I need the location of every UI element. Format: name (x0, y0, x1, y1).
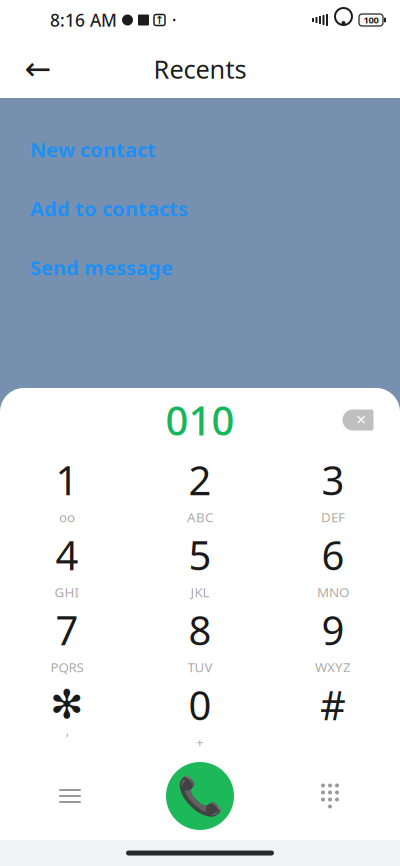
button[interactable]: 1 (0, 452, 133, 527)
button[interactable]: Send message (0, 238, 400, 297)
button[interactable]: 7 (0, 602, 133, 677)
staticText: 100 (363, 14, 378, 26)
staticText: TUV (187, 658, 212, 676)
staticText: 1 (55, 453, 78, 506)
staticText: 6 (321, 528, 344, 581)
button[interactable]: 5 (133, 527, 266, 602)
staticText: 5 (188, 528, 211, 581)
staticText: 9 (321, 603, 344, 656)
button[interactable]: Menu (42, 768, 98, 824)
button[interactable]: 0 (133, 677, 266, 752)
button[interactable]: ✻ (0, 677, 133, 752)
staticText: Add to contacts (30, 195, 188, 222)
button[interactable]: New contact (0, 120, 400, 179)
staticText: MNO (317, 583, 349, 601)
button[interactable]: Delete (330, 397, 386, 443)
staticText: 8 (188, 603, 211, 656)
button[interactable]: 3 (266, 452, 399, 527)
button[interactable]: 8 (133, 602, 266, 677)
staticText: 010 (165, 393, 234, 446)
staticText: 7 (55, 603, 78, 656)
staticText: Recents (153, 52, 246, 86)
button[interactable]: 9 (266, 602, 399, 677)
staticText: 4 (55, 528, 78, 581)
staticText: ← (24, 51, 51, 87)
staticText: DEF (321, 508, 345, 526)
staticText: 📞 (177, 775, 223, 817)
staticText: 0 (188, 678, 211, 731)
staticText: WXYZ (315, 658, 351, 676)
button[interactable]: 6 (266, 527, 399, 602)
staticText: # (320, 678, 346, 731)
staticText: 8:16 AM (50, 8, 117, 31)
staticText: ✻ (50, 682, 84, 727)
staticText: oo (59, 508, 75, 526)
button[interactable]: 4 (0, 527, 133, 602)
button[interactable]: # (266, 677, 399, 752)
staticText: GHI (54, 583, 79, 601)
staticText: New contact (30, 136, 156, 163)
staticText: ʼ (66, 729, 68, 747)
staticText: PQRS (50, 658, 83, 676)
staticText: 3 (321, 453, 344, 506)
button[interactable]: Keypad (302, 768, 358, 824)
staticText: + (196, 733, 204, 751)
staticText: JKL (190, 583, 209, 601)
button[interactable]: Add to contacts (0, 179, 400, 238)
staticText: ↑ (155, 14, 164, 26)
staticText: Send message (30, 254, 173, 281)
staticText: 2 (188, 453, 211, 506)
button[interactable]: 2 (133, 452, 266, 527)
staticText: ✕ (355, 412, 366, 427)
button[interactable]: Back (14, 45, 62, 93)
staticText: ABC (187, 508, 213, 526)
button[interactable]: Call (160, 756, 240, 836)
